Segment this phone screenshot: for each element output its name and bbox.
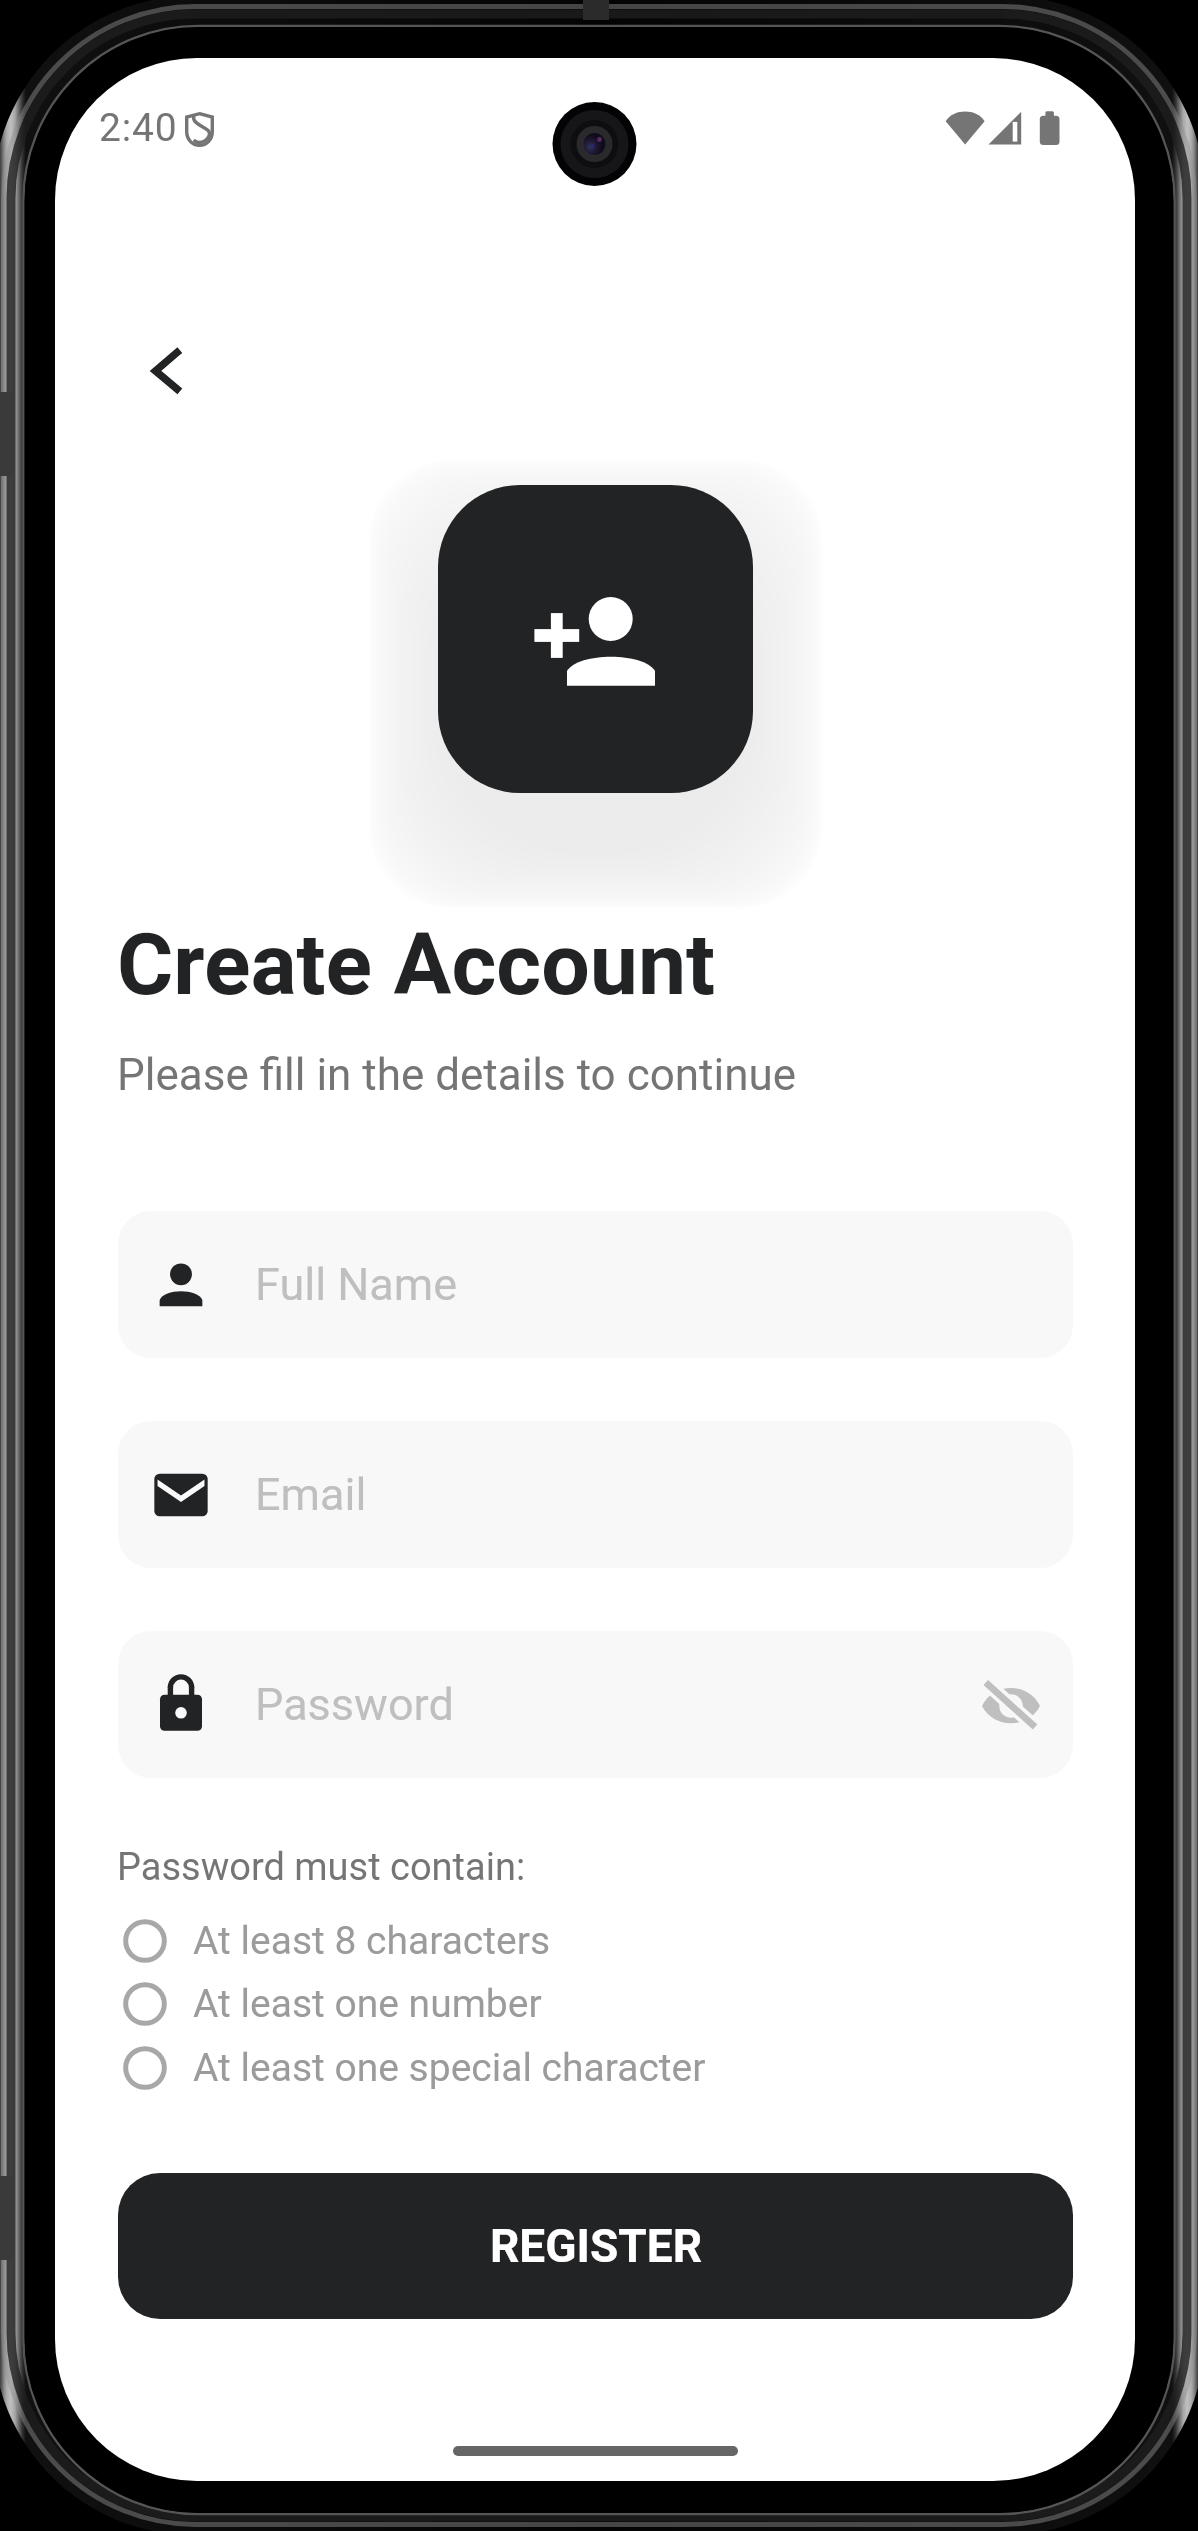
button[interactable]: Email <box>118 1421 1073 1568</box>
staticText: Full Name <box>255 1258 458 1311</box>
button[interactable]: Full Name <box>118 1211 1073 1358</box>
staticText: Email <box>255 1468 367 1521</box>
button[interactable]: REGISTER <box>118 2173 1073 2319</box>
button[interactable]: Back <box>90 308 210 428</box>
button[interactable]: Show password <box>957 1631 1065 1778</box>
staticText: At least one special character <box>193 2045 706 2091</box>
button[interactable]: At least 8 characters <box>107 1909 827 1972</box>
staticText: At least one number <box>193 1981 542 2027</box>
button[interactable]: Password <box>118 1631 1073 1778</box>
staticText: Create Account <box>117 914 716 1015</box>
button[interactable]: At least one special character <box>107 2036 827 2099</box>
staticText: At least 8 characters <box>193 1918 551 1964</box>
staticText: Password must contain: <box>117 1845 526 1890</box>
button[interactable]: At least one number <box>107 1972 827 2035</box>
staticText: REGISTER <box>490 2219 702 2273</box>
staticText: 2:40 <box>99 105 178 151</box>
staticText: Please fill in the details to continue <box>117 1049 797 1101</box>
staticText: Password <box>255 1678 454 1731</box>
